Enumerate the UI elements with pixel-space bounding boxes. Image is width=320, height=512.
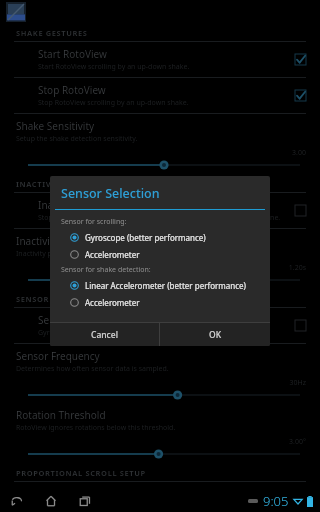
button[interactable]: Inactivity Delay <box>0 229 320 288</box>
staticText: INACTIVITY EXIT <box>16 179 87 189</box>
staticText: Determines how often sensor data is samp… <box>16 364 169 374</box>
staticText: Rotation Threshold <box>16 408 106 422</box>
button[interactable]: Accelerometer <box>50 246 270 263</box>
staticText: Stops RotoView scrolling automatically w… <box>38 213 281 223</box>
staticText: Gyroscope (better performance) <box>85 232 206 243</box>
staticText: Proportional Scroll is selected below th… <box>16 502 266 512</box>
staticText: Sensor for scrolling: <box>61 217 127 227</box>
button[interactable]: OK <box>160 323 270 346</box>
button[interactable]: Inactivity Exit <box>0 193 320 228</box>
button[interactable]: Sensor Frequency <box>0 344 320 403</box>
button[interactable]: Back <box>8 492 26 510</box>
staticText: OK <box>209 329 222 341</box>
staticText: Accelerometer <box>85 297 140 308</box>
staticText: Sensor Selection <box>61 185 160 202</box>
staticText: Max Size Ratio <box>16 487 84 501</box>
staticText: Gyroscope / Linear Accelerometer <box>38 328 150 338</box>
button[interactable]: Cancel <box>50 323 159 346</box>
button[interactable]: Rotation Threshold <box>0 403 320 462</box>
staticText: Setup the shake detection sensitivity. <box>16 134 138 144</box>
button[interactable]: Linear Accelerometer (better performance… <box>50 277 270 294</box>
staticText: SENSOR SETTINGS <box>16 294 93 304</box>
staticText: Shake Sensitivity <box>16 119 95 133</box>
staticText: Cancel <box>91 329 118 341</box>
staticText: Stop RotoView <box>38 83 106 97</box>
button[interactable]: Accelerometer <box>50 294 270 311</box>
staticText: Accelerometer <box>85 249 140 260</box>
staticText: SHAKE GESTURES <box>16 28 88 38</box>
staticText: 9:05 <box>263 492 289 510</box>
staticText: Sensor Selection <box>38 313 116 327</box>
staticText: Stop RotoView scrolling by an up-down sh… <box>38 98 189 108</box>
button[interactable]: Start RotoView <box>0 42 320 77</box>
staticText: Inactivity Delay <box>16 234 88 248</box>
button[interactable]: Home <box>42 492 60 510</box>
staticText: Sensor for shake detection: <box>61 265 151 275</box>
staticText: RotoView ignores rotations below this th… <box>16 423 176 433</box>
staticText: Sensor Frequency <box>16 349 100 363</box>
staticText: Inactivity Exit <box>38 198 101 212</box>
button[interactable]: Stop RotoView <box>0 78 320 113</box>
staticText: 1.20s <box>16 263 306 273</box>
staticText: Start RotoView <box>38 47 107 61</box>
staticText: PROPORTIONAL SCROLL SETUP <box>16 468 146 478</box>
button[interactable]: Sensor Selection <box>0 308 320 343</box>
staticText: Linear Accelerometer (better performance… <box>85 280 247 291</box>
button[interactable]: Recent apps <box>76 492 94 510</box>
button[interactable]: Max Size Ratio <box>0 482 320 512</box>
button[interactable]: Shake Sensitivity <box>0 114 320 173</box>
staticText: Inactivity period before RotoView stops. <box>16 249 147 259</box>
staticText: Start RotoView scrolling by an up-down s… <box>38 62 190 72</box>
button[interactable]: Gyroscope (better performance) <box>50 229 270 246</box>
